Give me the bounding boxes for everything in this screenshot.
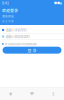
staticText: 9:41 [2,0,9,5]
staticText: 请先验证 [2,14,14,18]
button[interactable]: 我已阅读并同意用户协议和隐私政策 [0,42,64,45]
staticText: 欢迎登录 [2,8,18,13]
staticText: 请输入手机号码 [6,28,27,32]
staticText: 安全可靠 [2,19,14,23]
button[interactable]: Messages [21,92,43,95]
staticText: 登 录 [27,47,36,53]
staticText: 请输入短信验证码 [6,34,30,39]
staticText: 我已阅读并同意用户协议和隐私政策 [5,42,37,46]
staticText: ●●▮ [54,1,62,5]
button[interactable]: 登 录 [2,47,61,54]
button[interactable]: Profile [43,92,64,95]
button[interactable]: Home [0,92,21,95]
